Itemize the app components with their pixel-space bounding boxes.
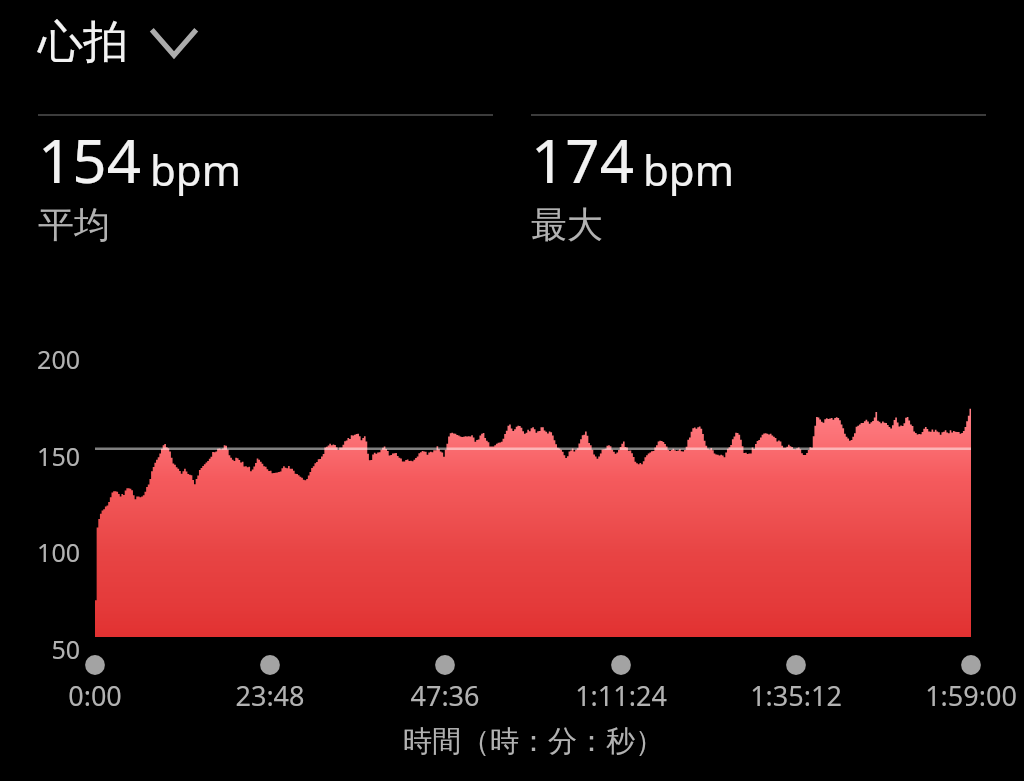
staticText: 1:59:00: [871, 677, 1024, 714]
staticText: 174: [531, 119, 634, 201]
staticText: 50: [0, 632, 80, 666]
staticText: 200: [0, 342, 80, 376]
staticText: 最大: [531, 202, 603, 247]
staticText: 100: [0, 535, 80, 569]
staticText: 1:11:24: [521, 677, 721, 714]
staticText: bpm: [150, 141, 241, 198]
staticText: 心拍: [38, 14, 128, 71]
staticText: 0:00: [0, 677, 195, 714]
staticText: 平均: [38, 202, 110, 247]
button[interactable]: 心拍 メトリック選択: [38, 14, 199, 71]
staticText: 47:36: [345, 677, 545, 714]
staticText: 154: [38, 119, 141, 201]
button[interactable]: 154: [38, 114, 493, 247]
staticText: 23:48: [170, 677, 370, 714]
staticText: 時間（時：分：秒）: [403, 723, 664, 760]
staticText: 1:35:12: [696, 677, 896, 714]
staticText: 150: [0, 439, 80, 473]
button[interactable]: 174: [531, 114, 986, 247]
staticText: bpm: [643, 141, 734, 198]
